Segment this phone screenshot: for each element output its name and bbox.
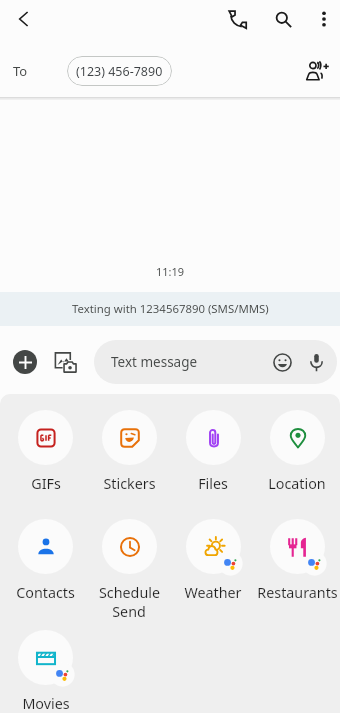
button[interactable]: Restaurants [255, 519, 339, 602]
button[interactable]: Voice message [299, 345, 333, 379]
staticText: Send [112, 602, 146, 621]
button[interactable]: Call [219, 1, 255, 37]
staticText: Schedule [99, 583, 160, 602]
staticText: 11:19 [156, 264, 185, 279]
staticText: To [13, 62, 28, 80]
button[interactable]: Search [265, 1, 301, 37]
staticText: (123) 456-7890 [76, 63, 163, 80]
staticText: Stickers [103, 474, 156, 493]
button[interactable]: Weather [171, 519, 255, 602]
staticText: Text message [111, 353, 198, 371]
staticText: Movies [22, 694, 70, 713]
staticText: Texting with 1234567890 (SMS/MMS) [72, 301, 269, 317]
staticText: Files [198, 474, 228, 493]
button[interactable]: (123) 456-7890 [67, 56, 172, 86]
button[interactable]: More options [306, 1, 340, 37]
button[interactable]: Add attachment [13, 350, 37, 374]
staticText: Location [268, 474, 326, 493]
button[interactable]: Files [171, 410, 255, 493]
button[interactable]: Movies [4, 630, 87, 713]
button[interactable]: Camera and gallery [51, 348, 79, 376]
button[interactable]: Emoji [265, 345, 299, 379]
button[interactable]: Contacts [4, 519, 87, 602]
staticText: GIFs [31, 474, 61, 493]
staticText: Contacts [16, 583, 75, 602]
button[interactable]: Stickers [87, 410, 171, 493]
staticText: Restaurants [257, 583, 338, 602]
staticText: Weather [184, 583, 242, 602]
button[interactable]: Schedule [87, 519, 171, 621]
button[interactable]: Add person [296, 50, 338, 92]
button[interactable]: Back [6, 1, 42, 37]
button[interactable]: Text message [94, 340, 337, 384]
button[interactable]: Location [255, 410, 339, 493]
button[interactable]: GIFs [4, 410, 87, 493]
